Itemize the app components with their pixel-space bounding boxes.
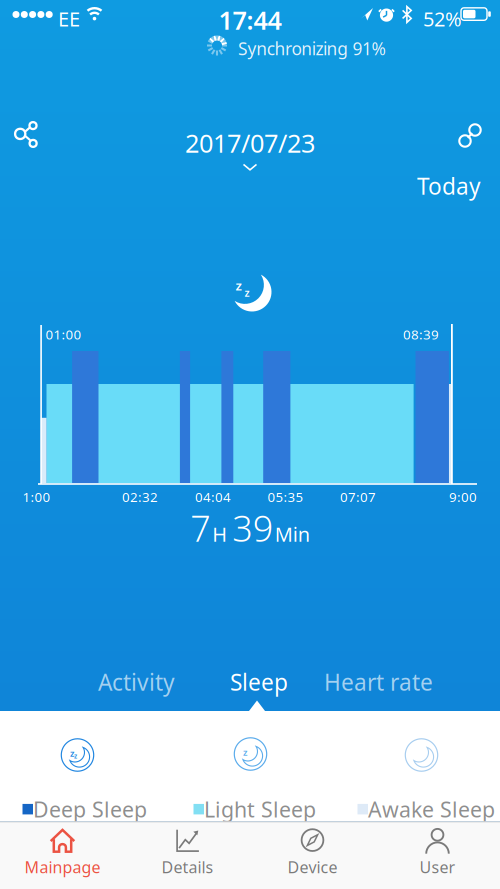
staticText: z (243, 746, 248, 758)
staticText: Mainpage (24, 856, 100, 878)
staticText: 2017/07/23 (185, 126, 315, 160)
staticText: H (212, 521, 227, 547)
button[interactable]: Heart rate (314, 659, 443, 705)
staticText: EE (58, 5, 80, 32)
staticText: 04:04 (195, 488, 231, 506)
button[interactable]: User (375, 821, 500, 889)
staticText: Min (275, 521, 310, 547)
staticText: Light Sleep (204, 795, 316, 823)
staticText: 1:00 (22, 488, 50, 506)
staticText: z (74, 751, 77, 760)
button[interactable]: Activity (88, 659, 185, 705)
staticText: Deep Sleep (33, 795, 147, 823)
staticText: z (70, 747, 75, 759)
staticText: Awake Sleep (368, 795, 495, 823)
staticText: Heart rate (324, 667, 433, 697)
staticText: 08:39 (403, 325, 439, 343)
staticText: 7 (190, 504, 211, 552)
staticText: Sleep (230, 667, 288, 697)
staticText: z (235, 276, 241, 294)
button[interactable]: 2017/07/23 (185, 126, 315, 171)
staticText: Activity (98, 667, 175, 697)
button[interactable]: Device (250, 821, 375, 889)
staticText: Details (161, 856, 213, 878)
button[interactable]: Details (125, 821, 250, 889)
staticText: 17:44 (218, 3, 281, 37)
staticText: Today (417, 171, 481, 201)
staticText: z (244, 285, 249, 300)
staticText: 02:32 (122, 488, 158, 506)
staticText: 07:07 (340, 488, 376, 506)
staticText: 9:00 (449, 488, 477, 506)
button[interactable]: Mainpage (0, 821, 125, 889)
staticText: 01:00 (45, 325, 81, 343)
staticText: 05:35 (267, 488, 303, 506)
button[interactable]: Today (409, 165, 489, 207)
staticText: User (419, 856, 455, 878)
button[interactable]: Share (3, 112, 49, 158)
staticText: Device (287, 856, 337, 878)
button[interactable]: Sleep (220, 659, 298, 705)
staticText: 39 (232, 504, 274, 552)
staticText: 52% (423, 5, 462, 32)
button[interactable]: Link device (449, 113, 493, 157)
staticText: Synchronizing 91% (238, 37, 386, 60)
